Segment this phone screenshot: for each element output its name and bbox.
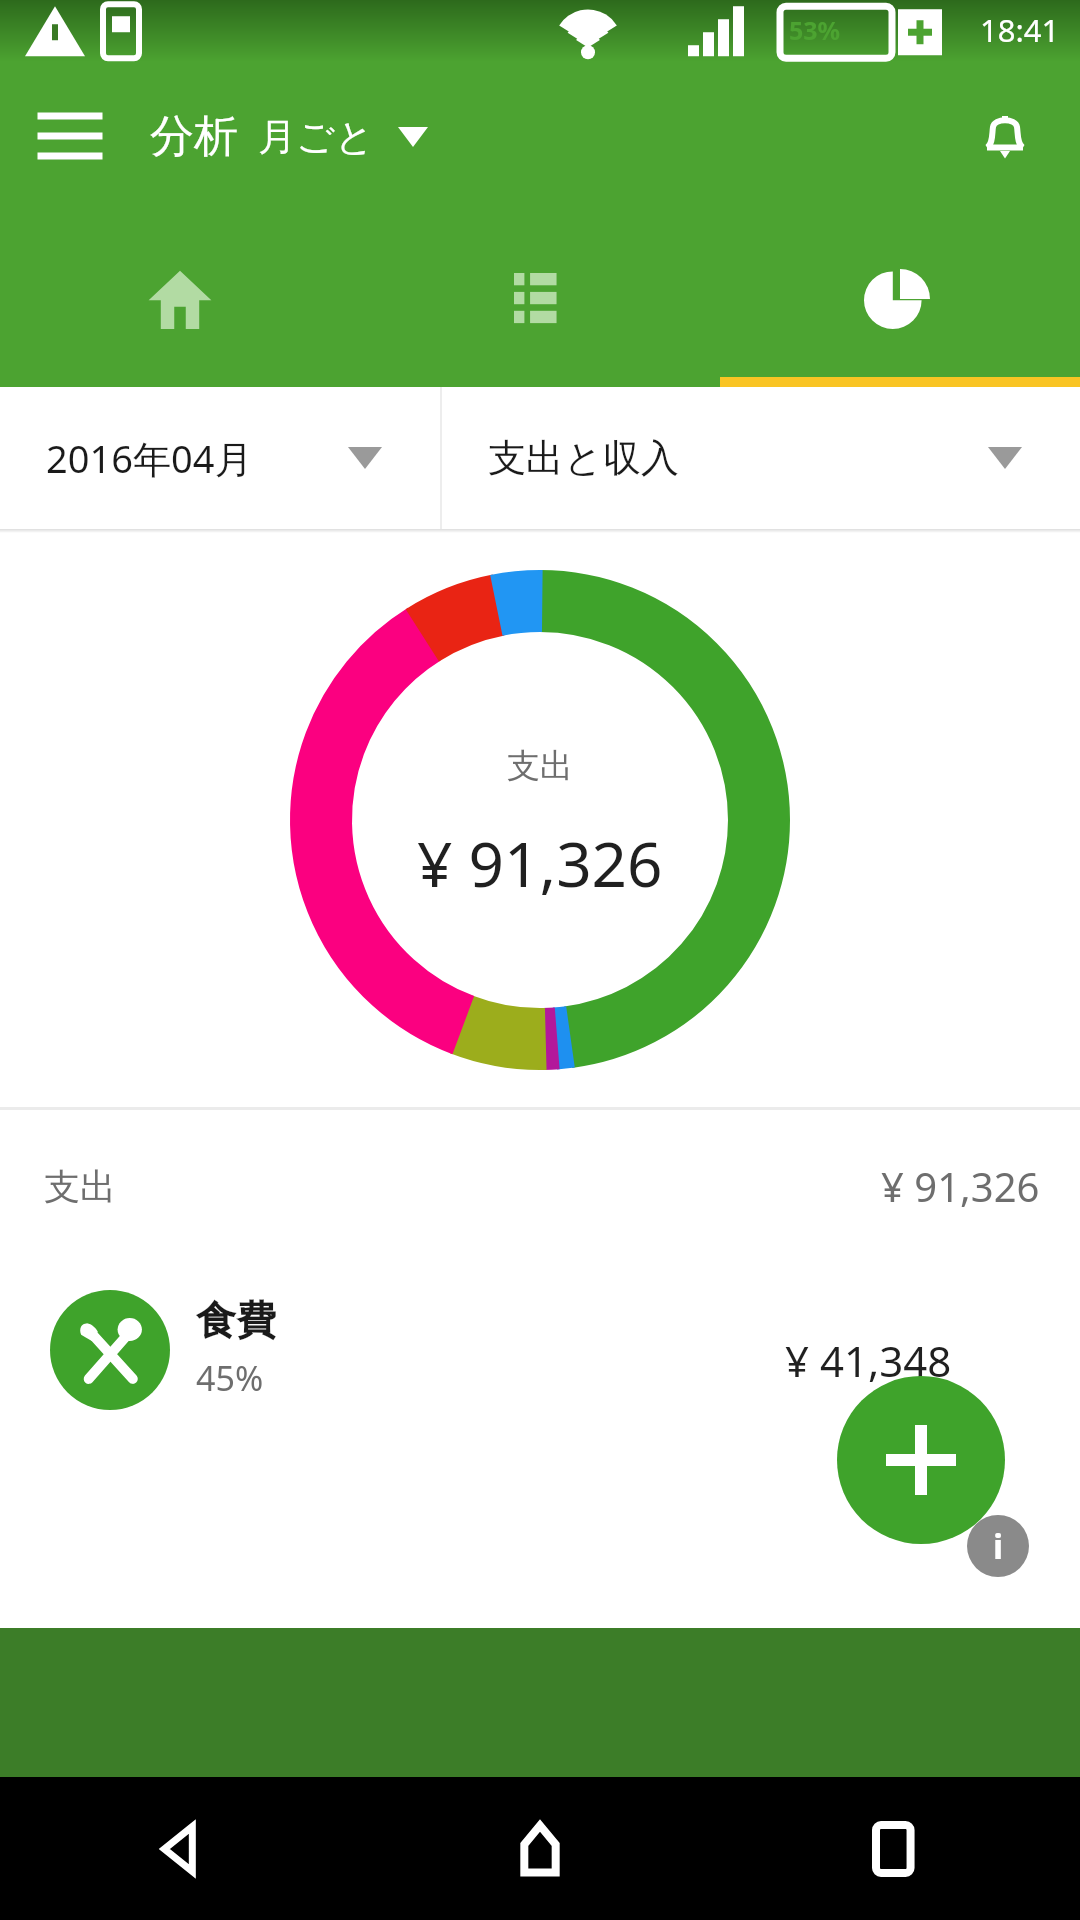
button[interactable]: Back bbox=[0, 1777, 360, 1920]
button[interactable]: Home bbox=[360, 1777, 720, 1920]
button[interactable]: 分析 bbox=[150, 109, 428, 164]
button[interactable]: Info bbox=[967, 1515, 1029, 1577]
button[interactable]: Add bbox=[837, 1376, 1005, 1544]
staticText: 月ごと bbox=[258, 113, 374, 161]
other: Charts bbox=[870, 269, 930, 329]
staticText: 53% bbox=[789, 13, 841, 47]
staticText: 45% bbox=[196, 1355, 264, 1401]
staticText: 支出と収入 bbox=[488, 434, 679, 482]
staticText: 2016年04月 bbox=[46, 432, 253, 484]
button[interactable]: 2016年04月 bbox=[0, 387, 440, 529]
staticText: ¥ 41,348 bbox=[785, 1332, 952, 1389]
button[interactable]: 支出 bbox=[0, 1110, 1080, 1262]
staticText: 分析 bbox=[150, 109, 238, 164]
button[interactable]: 支出と収入 bbox=[442, 387, 1080, 529]
other: Home bbox=[148, 267, 212, 331]
button[interactable]: Charts bbox=[720, 210, 1080, 387]
staticText: ¥ 91,326 bbox=[881, 1159, 1040, 1213]
staticText: 食費 bbox=[196, 1295, 276, 1345]
other: List bbox=[514, 273, 566, 325]
button[interactable]: 食費 bbox=[0, 1262, 1080, 1437]
staticText: ¥ 91,326 bbox=[417, 821, 663, 905]
staticText: 支出 bbox=[44, 1164, 116, 1209]
staticText: 18:41 bbox=[980, 9, 1060, 51]
button[interactable]: Home bbox=[0, 210, 360, 387]
button[interactable]: Menu bbox=[28, 94, 112, 178]
button[interactable]: List bbox=[360, 210, 720, 387]
staticText: i bbox=[993, 1523, 1004, 1569]
button[interactable]: Notifications bbox=[960, 91, 1050, 181]
staticText: 支出 bbox=[507, 745, 573, 787]
button[interactable]: Recents bbox=[720, 1777, 1080, 1920]
